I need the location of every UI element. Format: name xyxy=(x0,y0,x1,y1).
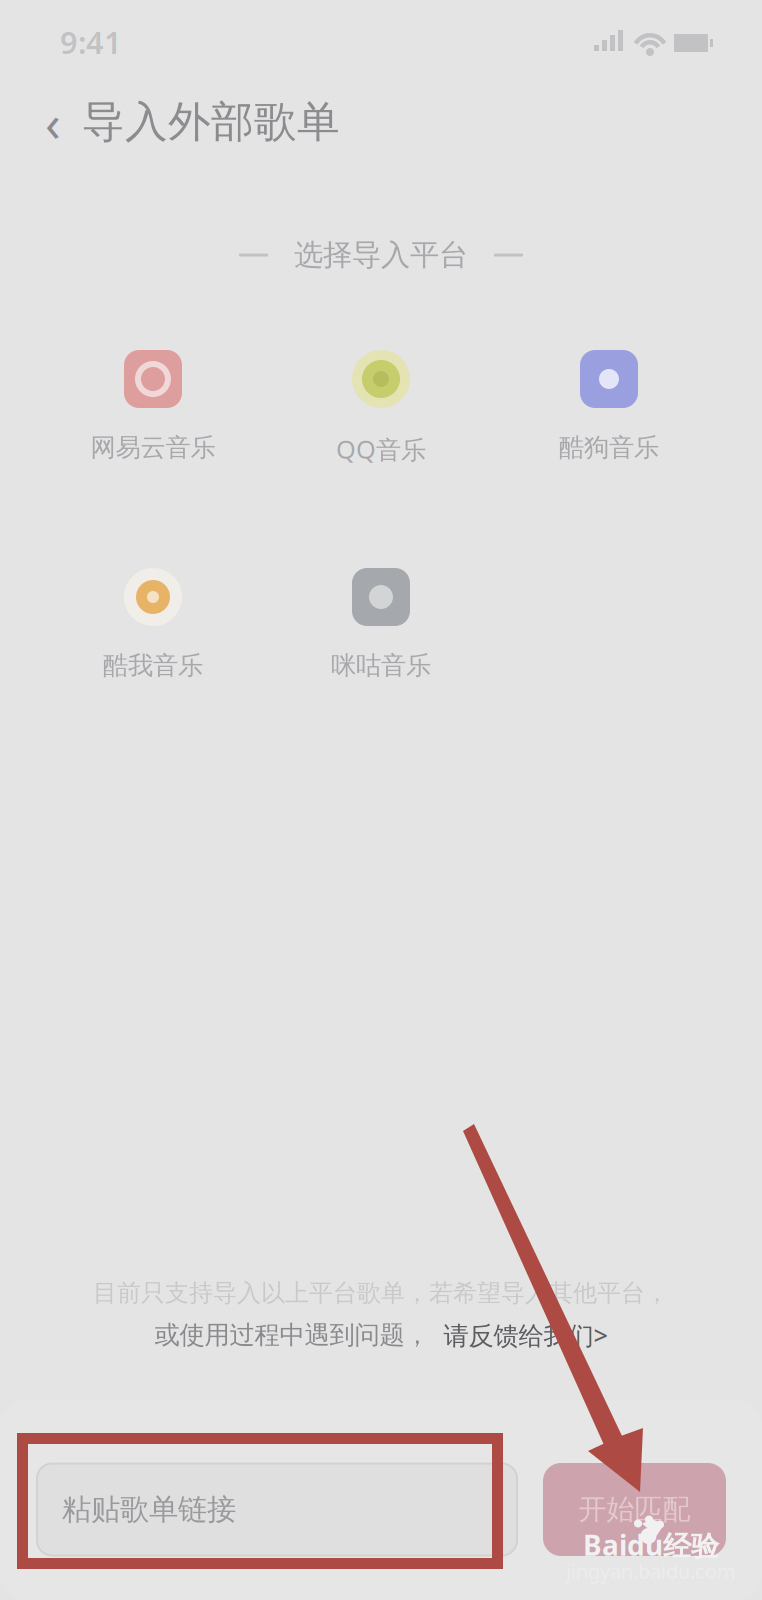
button[interactable]: 返回 xyxy=(24,93,82,151)
button[interactable]: 请反馈给我们> xyxy=(443,1318,607,1352)
button[interactable]: 酷狗音乐 xyxy=(495,350,723,472)
staticText: 酷狗音乐 xyxy=(559,432,659,463)
staticText: 或使用过程中遇到问题， xyxy=(154,1319,429,1350)
staticText: Baidu经验 xyxy=(583,1526,719,1564)
staticText: 咪咕音乐 xyxy=(331,650,431,681)
staticText: QQ音乐 xyxy=(336,432,426,466)
staticText: 9:41 xyxy=(60,22,122,62)
staticText: 选择导入平台 xyxy=(294,237,468,273)
staticText: 请反馈给我们> xyxy=(443,1318,607,1352)
staticText: 导入外部歌单 xyxy=(82,96,340,148)
button[interactable]: 开始匹配 xyxy=(543,1463,726,1556)
button[interactable]: 酷我音乐 xyxy=(39,568,267,690)
staticText: 开始匹配 xyxy=(578,1492,690,1527)
button[interactable]: QQ音乐 xyxy=(267,350,495,472)
button[interactable]: 网易云音乐 xyxy=(39,350,267,472)
button[interactable]: 粘贴歌单链接 xyxy=(37,1463,517,1555)
staticText: 粘贴歌单链接 xyxy=(62,1491,236,1527)
staticText: 网易云音乐 xyxy=(90,432,215,463)
staticText: ‹ xyxy=(45,88,61,156)
staticText: 酷我音乐 xyxy=(103,650,203,681)
button[interactable]: 咪咕音乐 xyxy=(267,568,495,690)
staticText: 目前只支持导入以上平台歌单，若希望导入其他平台， xyxy=(93,1278,669,1308)
